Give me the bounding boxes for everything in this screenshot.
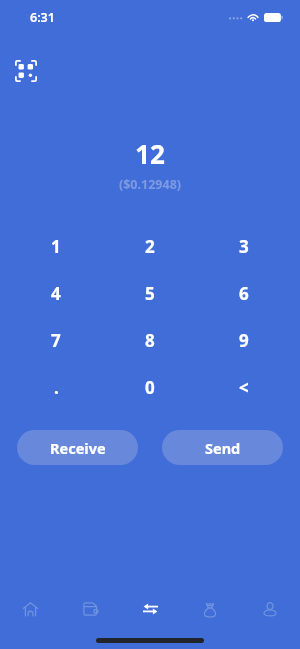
button[interactable]: Home <box>0 591 60 627</box>
button[interactable]: 9 <box>197 317 291 364</box>
button[interactable]: 5 <box>103 270 197 317</box>
button[interactable]: 0 <box>103 364 197 411</box>
button[interactable]: 6 <box>197 270 291 317</box>
button[interactable]: Backspace <box>197 364 291 411</box>
staticText: 12 <box>0 136 300 171</box>
staticText: 2 <box>145 235 155 258</box>
staticText: Send <box>205 438 241 458</box>
button[interactable]: 4 <box>9 270 103 317</box>
button[interactable]: Wallet <box>60 591 120 627</box>
button[interactable]: Savings <box>180 591 240 627</box>
staticText: 7 <box>51 329 61 352</box>
button[interactable]: Exchange <box>120 591 180 627</box>
button[interactable]: Receive <box>17 430 138 465</box>
staticText: Receive <box>50 438 106 458</box>
staticText: ($0.12948) <box>0 176 300 193</box>
staticText: . <box>54 376 59 399</box>
button[interactable]: 7 <box>9 317 103 364</box>
staticText: 1 <box>51 235 61 258</box>
staticText: 6:31 <box>30 9 55 26</box>
button[interactable]: 2 <box>103 223 197 270</box>
staticText: 8 <box>145 329 155 352</box>
staticText: 3 <box>239 235 249 258</box>
staticText: < <box>239 376 249 399</box>
staticText: 0 <box>145 376 155 399</box>
staticText: 4 <box>51 282 61 305</box>
staticText: 5 <box>145 282 155 305</box>
button[interactable]: 8 <box>103 317 197 364</box>
button[interactable]: 3 <box>197 223 291 270</box>
button[interactable]: Send <box>162 430 283 465</box>
button[interactable]: Profile <box>240 591 300 627</box>
staticText: 6 <box>239 282 249 305</box>
button[interactable]: 1 <box>9 223 103 270</box>
button[interactable]: . <box>9 364 103 411</box>
staticText: 9 <box>239 329 249 352</box>
button[interactable]: Scan QR code <box>12 57 40 85</box>
